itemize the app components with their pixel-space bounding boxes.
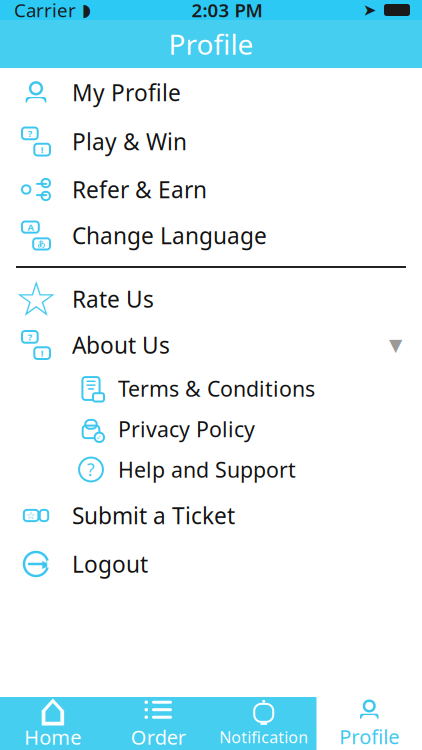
staticText: Refer & Earn — [72, 174, 207, 204]
staticText: Profile — [168, 25, 253, 63]
staticText: ▼ — [389, 335, 402, 355]
button[interactable]: ? — [0, 322, 422, 368]
staticText: Rate Us — [72, 284, 154, 314]
staticText: ☆ — [14, 272, 57, 326]
button[interactable]: ☆ — [0, 276, 422, 322]
button[interactable]: A — [0, 213, 422, 258]
button[interactable]: ? — [0, 117, 422, 166]
staticText: ☆ — [26, 509, 36, 521]
button[interactable]: ✓ — [0, 409, 422, 449]
staticText: ? — [28, 331, 32, 343]
button[interactable]: Terms & Conditions — [0, 368, 422, 409]
button[interactable]: Profile — [316, 697, 422, 750]
staticText: Notification — [219, 726, 308, 748]
staticText: Order — [131, 724, 186, 750]
staticText: Profile — [339, 723, 399, 750]
staticText: 2:03 PM — [191, 0, 262, 22]
staticText: ◗ — [82, 0, 91, 20]
button[interactable]: My Profile — [0, 68, 422, 117]
staticText: ➤ — [363, 1, 376, 19]
button[interactable]: Notification — [211, 697, 316, 750]
staticText: ⌂ — [38, 684, 67, 735]
button[interactable]: ☆ — [0, 490, 422, 541]
staticText: Submit a Ticket — [72, 500, 235, 530]
staticText: ▶ — [42, 558, 50, 570]
button[interactable]: Order — [105, 697, 211, 750]
staticText: あ — [38, 239, 46, 249]
staticText: ? — [28, 127, 32, 140]
staticText: ? — [87, 458, 95, 481]
staticText: Change Language — [72, 220, 267, 250]
staticText: Privacy Policy — [118, 415, 255, 443]
button[interactable]: ? — [0, 449, 422, 490]
button[interactable]: Refer & Earn — [0, 166, 422, 213]
staticText: Play & Win — [72, 126, 187, 156]
staticText: ✓ — [96, 433, 102, 441]
staticText: ! — [41, 347, 44, 359]
staticText: Terms & Conditions — [118, 374, 315, 403]
staticText: My Profile — [72, 77, 181, 107]
staticText: Help and Support — [118, 455, 296, 484]
staticText: Carrier — [14, 0, 76, 22]
staticText: Home — [24, 724, 81, 750]
staticText: About Us — [72, 330, 170, 360]
button[interactable]: ▶ — [0, 541, 422, 587]
staticText: ! — [41, 143, 44, 156]
staticText: Logout — [72, 549, 148, 579]
staticText: A — [27, 221, 33, 233]
button[interactable]: ⌂ — [0, 697, 105, 750]
